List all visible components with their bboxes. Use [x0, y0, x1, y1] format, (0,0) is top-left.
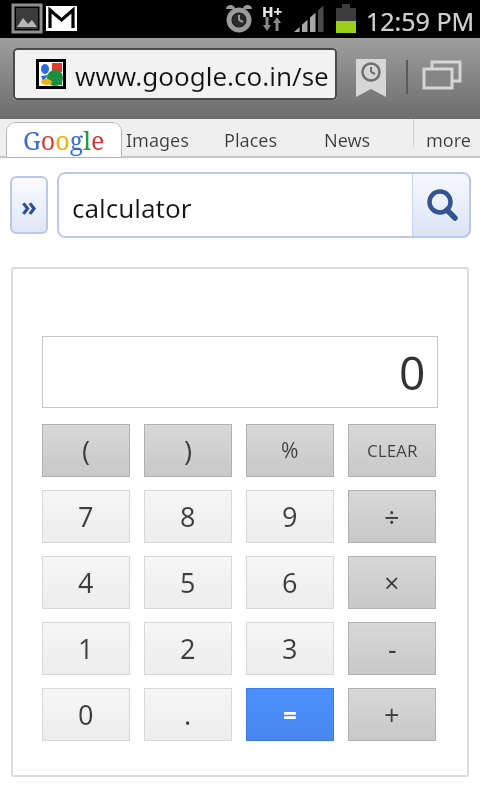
button[interactable]: News — [324, 128, 371, 153]
button[interactable]: 4 — [42, 556, 130, 609]
staticText: 5 — [180, 564, 196, 601]
button[interactable] — [356, 59, 386, 97]
button[interactable]: 9 — [246, 490, 334, 543]
staticText: . — [184, 696, 192, 733]
staticText: 9 — [282, 498, 298, 535]
staticText: H+ — [262, 1, 283, 21]
button[interactable]: Images — [126, 128, 189, 153]
staticText: ) — [184, 432, 193, 469]
button[interactable]: % — [246, 424, 334, 477]
button[interactable]: more — [426, 128, 471, 153]
staticText: Google — [23, 123, 105, 157]
button[interactable]: ÷ — [348, 490, 436, 543]
button[interactable]: Google — [6, 122, 122, 158]
staticText: 2 — [180, 630, 196, 667]
staticText: + — [384, 696, 400, 733]
staticText: 0 — [78, 696, 94, 733]
staticText: 7 — [78, 498, 94, 535]
button[interactable]: × — [348, 556, 436, 609]
button[interactable]: . — [144, 688, 232, 741]
button[interactable]: ) — [144, 424, 232, 477]
button[interactable]: calculator — [57, 172, 471, 238]
button[interactable]: - — [348, 622, 436, 675]
button[interactable]: 2 — [144, 622, 232, 675]
staticText: » — [21, 188, 37, 223]
button[interactable]: ( — [42, 424, 130, 477]
staticText: calculator — [72, 190, 192, 225]
staticText: 6 — [282, 564, 298, 601]
button[interactable]: Places — [224, 128, 278, 153]
staticText: × — [384, 564, 400, 601]
staticText: % — [281, 436, 299, 465]
staticText: 12:59 PM — [366, 4, 475, 38]
staticText: 8 — [180, 498, 196, 535]
button[interactable]: 8 — [144, 490, 232, 543]
staticText: 1 — [78, 630, 94, 667]
button[interactable]: www.google.co.in/se — [13, 48, 337, 100]
button[interactable]: 0 — [42, 688, 130, 741]
staticText: 3 — [282, 630, 298, 667]
staticText: ÷ — [384, 498, 400, 535]
button[interactable]: CLEAR — [348, 424, 436, 477]
staticText: = — [283, 698, 297, 731]
button[interactable]: + — [348, 688, 436, 741]
button[interactable]: » — [10, 176, 48, 234]
staticText: 0 — [399, 341, 426, 404]
button[interactable]: 1 — [42, 622, 130, 675]
staticText: 4 — [78, 564, 94, 601]
staticText: CLEAR — [367, 439, 418, 462]
button[interactable]: 5 — [144, 556, 232, 609]
button[interactable]: 7 — [42, 490, 130, 543]
button[interactable] — [424, 62, 462, 90]
staticText: www.google.co.in/se — [75, 58, 329, 93]
button[interactable]: = — [246, 688, 334, 741]
button[interactable]: 6 — [246, 556, 334, 609]
staticText: - — [388, 630, 397, 667]
button[interactable]: 3 — [246, 622, 334, 675]
staticText: ( — [82, 432, 91, 469]
